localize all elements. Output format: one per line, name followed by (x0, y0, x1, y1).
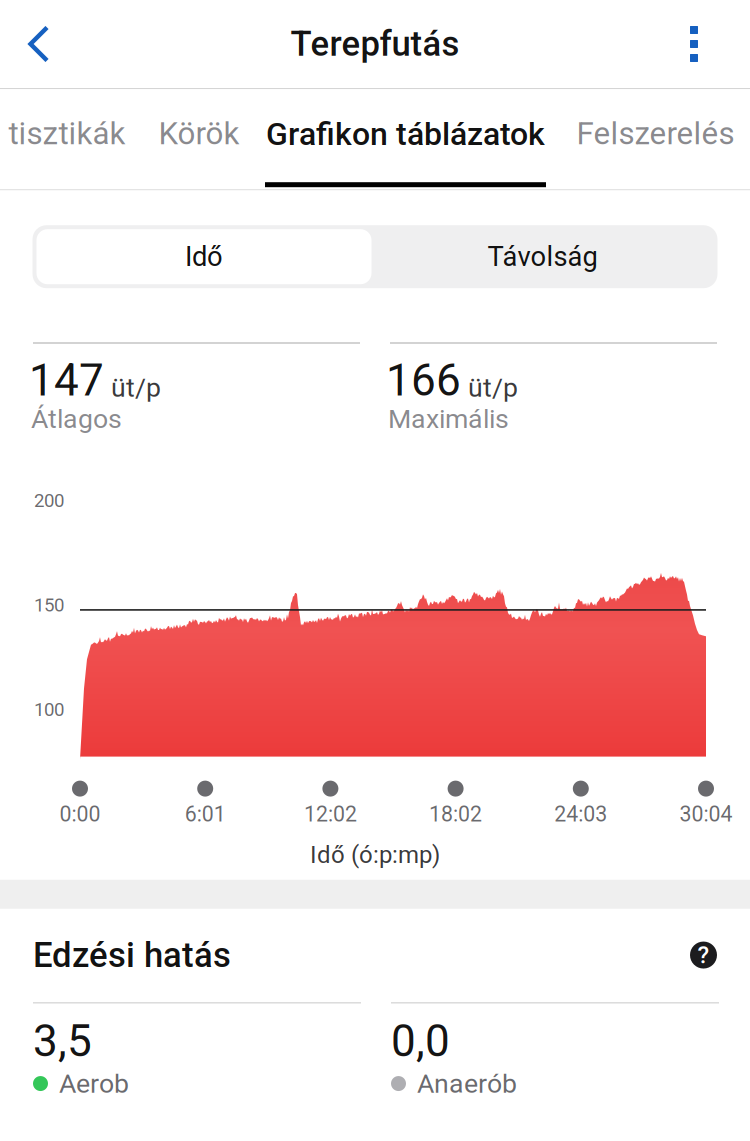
staticText: Távolság (487, 241, 597, 273)
staticText: Felszerelés (576, 115, 734, 152)
staticText: tisztikák (8, 115, 125, 152)
staticText: 18:02 (429, 802, 482, 827)
staticText: Edzési hatás (33, 935, 231, 975)
button[interactable]: More options (666, 16, 722, 72)
staticText: 0,0 (391, 1015, 450, 1067)
button[interactable]: Grafikon táblázatok (264, 89, 547, 189)
button[interactable]: tisztikák (0, 89, 134, 189)
staticText: 3,5 (33, 1015, 92, 1067)
button[interactable]: Távolság (371, 229, 713, 284)
staticText: Idő (185, 241, 223, 273)
staticText: Körök (158, 115, 239, 152)
button[interactable]: Help (690, 942, 717, 969)
staticText: Maximális (388, 403, 509, 435)
staticText: 200 (34, 490, 64, 512)
staticText: 0:00 (59, 802, 100, 827)
staticText: Grafikon táblázatok (266, 115, 545, 153)
staticText: 24:03 (554, 802, 607, 827)
staticText: üt/p (468, 372, 518, 403)
staticText: Idő (ó:p:mp) (310, 841, 440, 869)
staticText: 147 (29, 355, 104, 406)
button[interactable]: Back (11, 16, 67, 72)
staticText: üt/p (111, 372, 161, 403)
staticText: Anaerób (417, 1068, 517, 1099)
staticText: ? (697, 941, 709, 969)
staticText: 150 (34, 594, 64, 616)
button[interactable]: Körök (134, 89, 264, 189)
staticText: 6:01 (185, 802, 226, 827)
staticText: 12:02 (304, 802, 357, 827)
staticText: Átlagos (31, 403, 122, 435)
staticText: Aerob (59, 1068, 129, 1099)
staticText: 166 (386, 355, 461, 406)
staticText: Terepfutás (290, 24, 459, 64)
staticText: 100 (34, 699, 64, 721)
button[interactable]: Felszerelés (547, 89, 750, 189)
staticText: 30:04 (679, 802, 732, 827)
button[interactable]: Idő (36, 229, 371, 284)
